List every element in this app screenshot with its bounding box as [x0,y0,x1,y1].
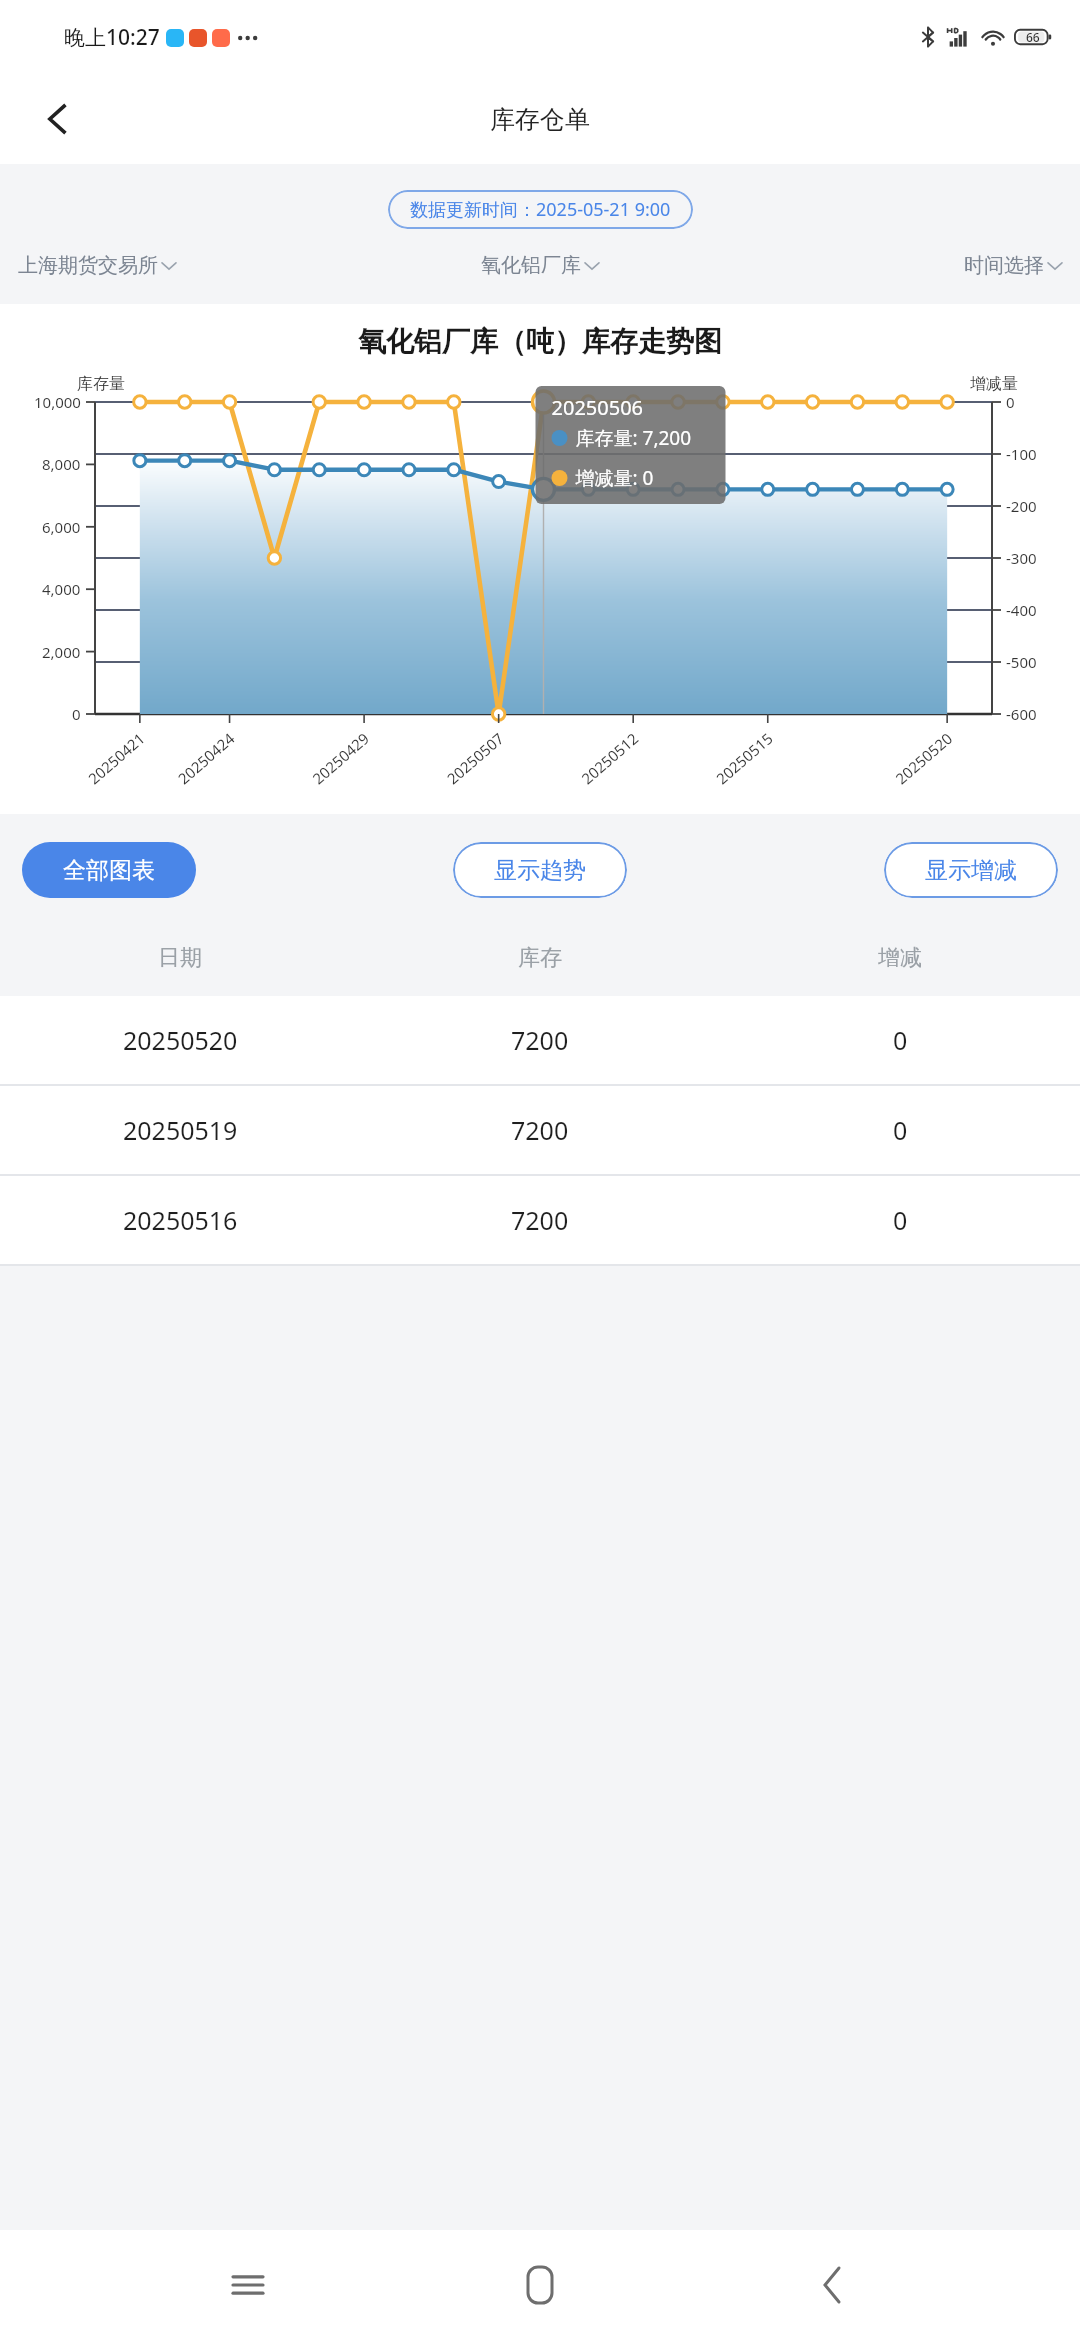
staticText: 0 [893,1203,908,1237]
staticText: 显示增减 [925,856,1017,885]
button[interactable]: 上海期货交易所 [14,249,180,282]
button[interactable]: Back [788,2241,876,2329]
staticText: 7200 [511,1113,569,1147]
staticText: 晚上10:27 [64,23,160,52]
button[interactable]: Back [26,87,90,151]
button[interactable]: 20250520 [0,996,1080,1084]
staticText: 日期 [158,944,202,972]
button[interactable]: 20250516 [0,1176,1080,1264]
staticText: 66 [1026,29,1040,45]
button[interactable]: Recent apps [204,2241,292,2329]
staticText: 20250520 [123,1023,238,1057]
staticText: 库存仓单 [490,104,590,135]
staticText: 20250519 [123,1113,238,1147]
staticText: 7200 [511,1203,569,1237]
staticText: 时间选择 [964,253,1044,278]
button[interactable]: Home [496,2241,584,2329]
button[interactable]: 时间选择 [960,249,1066,282]
staticText: 增减 [878,944,922,972]
staticText: 7200 [511,1023,569,1057]
staticText: 20250516 [123,1203,238,1237]
button[interactable]: 20250519 [0,1086,1080,1174]
staticText: 上海期货交易所 [18,253,158,278]
staticText: 全部图表 [63,856,155,885]
button[interactable]: 显示趋势 [453,842,627,898]
staticText: 氧化铝厂库 [481,253,581,278]
staticText: 数据更新时间：2025-05-21 9:00 [410,197,671,222]
staticText: 库存 [518,944,562,972]
staticText: 0 [893,1023,908,1057]
button[interactable]: 显示增减 [884,842,1058,898]
button[interactable]: 数据更新时间：2025-05-21 9:00 [388,190,693,229]
staticText: 0 [893,1113,908,1147]
staticText: 显示趋势 [494,856,586,885]
button[interactable]: 全部图表 [22,842,196,898]
button[interactable]: 氧化铝厂库 [477,249,603,282]
staticText: 氧化铝厂库（吨）库存走势图 [358,324,722,359]
